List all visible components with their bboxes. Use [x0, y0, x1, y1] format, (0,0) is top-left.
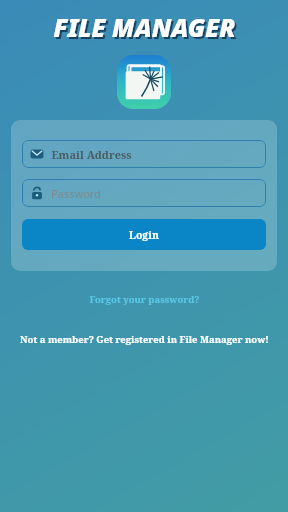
other: File Manager logo: [117, 55, 171, 109]
staticText: Not a member? Get registered in File Man…: [20, 333, 269, 346]
staticText: FILE MANAGER: [55, 12, 238, 46]
staticText: Login: [129, 228, 159, 242]
staticText: Email Address: [51, 147, 132, 162]
staticText: FILE MANAGER: [53, 10, 236, 44]
button[interactable]: Login: [22, 219, 266, 250]
button[interactable]: Email Address: [22, 140, 266, 168]
button[interactable]: Password: [22, 179, 266, 207]
button[interactable]: Not a member? Get registered in File Man…: [12, 330, 277, 349]
staticText: Password: [51, 186, 101, 201]
button[interactable]: Forgot your password?: [79, 290, 210, 309]
staticText: Forgot your password?: [89, 293, 200, 306]
